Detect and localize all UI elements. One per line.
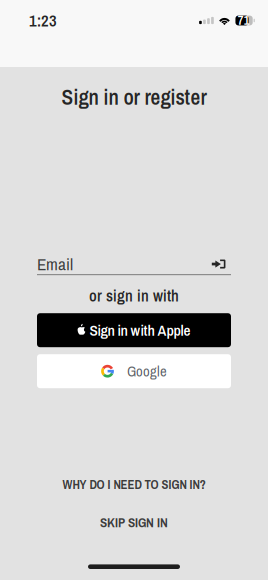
staticText: or sign in with [89, 285, 179, 306]
button[interactable]: WHY DO I NEED TO SIGN IN? [52, 477, 215, 491]
staticText: 71 [238, 12, 250, 29]
staticText: Sign in or register [61, 83, 206, 111]
staticText: Sign in with Apple [89, 320, 190, 341]
staticText: Email [37, 252, 73, 276]
staticText: WHY DO I NEED TO SIGN IN? [62, 476, 205, 493]
button[interactable]: SKIP SIGN IN [90, 515, 178, 529]
staticText: 1:23 [29, 9, 57, 32]
staticText: SKIP SIGN IN [100, 513, 168, 531]
staticText: Google [127, 361, 167, 381]
button[interactable]: Continue with email [204, 257, 231, 270]
button[interactable]: Sign in with Apple [37, 313, 231, 347]
button[interactable]: Google [37, 354, 231, 388]
